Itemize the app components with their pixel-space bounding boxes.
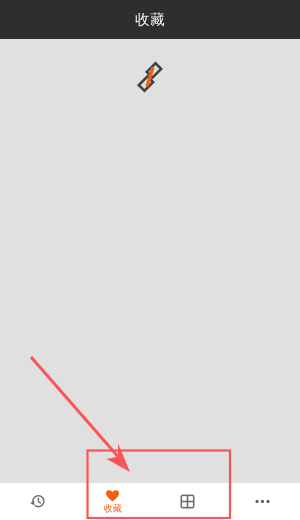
button[interactable]: 收藏 [75, 483, 150, 520]
button[interactable]: Grid [150, 483, 225, 520]
button[interactable]: More [225, 483, 300, 520]
staticText: 收藏 [135, 10, 165, 29]
staticText: 收藏 [103, 503, 121, 514]
button[interactable]: History [0, 483, 75, 520]
